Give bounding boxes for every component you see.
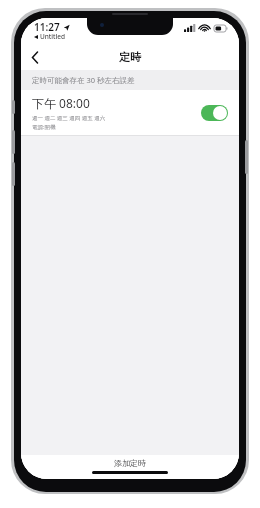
staticText: 定時可能會存在 30 秒左右誤差 (32, 75, 135, 85)
staticText: 週一 週二 週三 週四 週五 週六 (32, 114, 106, 122)
staticText: Untitled (40, 32, 66, 41)
staticText: 下午 08:00 (32, 95, 90, 111)
button[interactable]: Back (21, 44, 49, 70)
staticText: 電源:開機 (32, 123, 56, 131)
button[interactable]: 添加定時 (21, 455, 239, 471)
button[interactable]: Toggle alarm (201, 105, 228, 121)
staticText: 添加定時 (114, 458, 146, 468)
staticText: 11:27 (34, 20, 60, 34)
staticText: 定時 (119, 50, 141, 64)
button[interactable]: 下午 08:00 (21, 90, 239, 135)
